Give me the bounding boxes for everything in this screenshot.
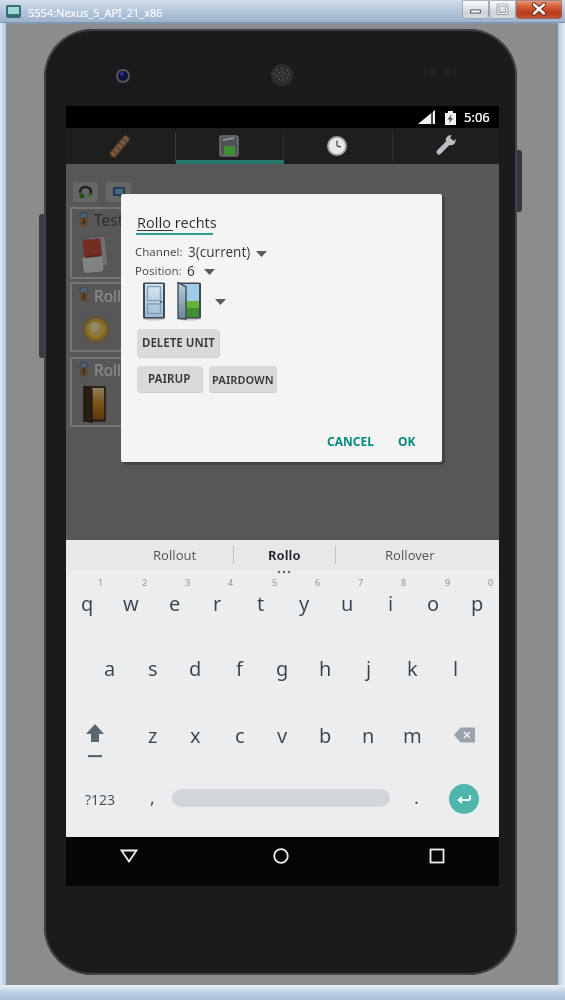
staticText: Channel: xyxy=(135,244,183,260)
button[interactable]: j xyxy=(347,637,390,699)
staticText: n xyxy=(362,722,375,749)
button[interactable] xyxy=(272,847,290,865)
button[interactable]: OK xyxy=(390,430,424,452)
staticText: Rollo xyxy=(268,546,301,564)
staticText: 5:06 xyxy=(464,108,490,126)
button[interactable]: l xyxy=(434,637,477,699)
staticText: u xyxy=(341,590,354,617)
staticText: v xyxy=(277,722,288,749)
staticText: PAIRDOWN xyxy=(212,372,274,387)
button[interactable]: k xyxy=(391,637,434,699)
staticText: 3 xyxy=(185,576,191,588)
staticText: i xyxy=(388,590,394,617)
staticText: y xyxy=(299,590,310,617)
staticText: j xyxy=(366,655,372,682)
staticText: 1 xyxy=(98,576,104,588)
staticText: f xyxy=(236,655,243,682)
staticText: q xyxy=(81,590,94,617)
staticText: CANCEL xyxy=(327,433,374,449)
staticText: Rollo xyxy=(94,285,131,306)
button[interactable]: a xyxy=(88,637,131,699)
button[interactable]: x xyxy=(174,704,217,766)
button[interactable] xyxy=(462,0,489,19)
staticText: ?123 xyxy=(85,790,116,809)
button[interactable]: Rollo xyxy=(234,540,335,570)
button[interactable] xyxy=(70,207,280,279)
staticText: h xyxy=(319,655,332,682)
button[interactable]: z xyxy=(131,704,174,766)
staticText: OK xyxy=(398,433,416,449)
staticText: 5554:Nexus_5_API_21_x86 xyxy=(28,5,163,20)
staticText: z xyxy=(148,722,158,749)
staticText: b xyxy=(319,722,332,749)
button[interactable]: PAIRUP xyxy=(137,366,202,392)
staticText: 6 xyxy=(187,262,195,280)
staticText: p xyxy=(471,590,484,617)
button[interactable] xyxy=(454,727,477,743)
staticText: 6 xyxy=(315,576,321,588)
staticText: s xyxy=(148,655,158,682)
button[interactable]: Rollout xyxy=(125,540,225,570)
button[interactable]: g xyxy=(261,637,304,699)
button[interactable] xyxy=(6,5,21,18)
button[interactable]: o xyxy=(412,572,455,634)
button[interactable]: r xyxy=(196,572,239,634)
button[interactable]: y xyxy=(283,572,326,634)
staticText: Rollo xyxy=(94,359,131,380)
button[interactable] xyxy=(489,0,516,19)
button[interactable]: q xyxy=(66,572,109,634)
staticText: 0 xyxy=(488,576,494,588)
button[interactable]: p xyxy=(456,572,499,634)
staticText: 3(current) xyxy=(188,243,251,261)
button[interactable]: u xyxy=(326,572,369,634)
button[interactable]: Rollover xyxy=(345,540,475,570)
button[interactable] xyxy=(121,194,442,462)
button[interactable]: CANCEL xyxy=(320,430,380,452)
staticText: x xyxy=(190,722,201,749)
staticText: g xyxy=(276,655,289,682)
button[interactable] xyxy=(175,282,203,321)
button[interactable] xyxy=(70,282,280,352)
staticText: m xyxy=(403,722,422,749)
staticText: , xyxy=(150,785,155,810)
button[interactable] xyxy=(449,784,479,814)
button[interactable]: t xyxy=(239,572,282,634)
button[interactable]: DELETE UNIT xyxy=(137,329,219,357)
button[interactable]: h xyxy=(304,637,347,699)
button[interactable] xyxy=(215,132,243,160)
staticText: Position: xyxy=(135,263,182,279)
button[interactable]: n xyxy=(347,704,390,766)
button[interactable]: s xyxy=(131,637,174,699)
button[interactable] xyxy=(323,132,351,160)
button[interactable]: PAIRDOWN xyxy=(209,366,277,392)
button[interactable]: m xyxy=(391,704,434,766)
button[interactable]: d xyxy=(174,637,217,699)
button[interactable] xyxy=(84,723,108,761)
button[interactable] xyxy=(106,132,134,160)
staticText: a xyxy=(104,655,116,682)
staticText: 7 xyxy=(358,576,364,588)
button[interactable]: ?123 xyxy=(78,780,122,818)
button[interactable]: e xyxy=(153,572,196,634)
staticText: r xyxy=(213,590,222,617)
button[interactable] xyxy=(172,789,390,807)
staticText: Rollout xyxy=(153,546,197,564)
staticText: Test xyxy=(94,209,124,230)
button[interactable] xyxy=(141,282,167,321)
button[interactable]: v xyxy=(261,704,304,766)
staticText: e xyxy=(169,590,181,617)
button[interactable]: b xyxy=(304,704,347,766)
button[interactable]: i xyxy=(369,572,412,634)
button[interactable] xyxy=(70,357,280,427)
button[interactable] xyxy=(428,847,446,865)
button[interactable] xyxy=(516,0,562,19)
button[interactable]: f xyxy=(218,637,261,699)
button[interactable]: c xyxy=(218,704,261,766)
staticText: Rollo rechts xyxy=(137,212,217,232)
staticText: o xyxy=(427,590,440,617)
staticText: 5 xyxy=(272,576,278,588)
button[interactable]: w xyxy=(109,572,152,634)
button[interactable] xyxy=(120,847,138,865)
button[interactable] xyxy=(431,132,459,160)
staticText: DELETE UNIT xyxy=(142,335,215,351)
